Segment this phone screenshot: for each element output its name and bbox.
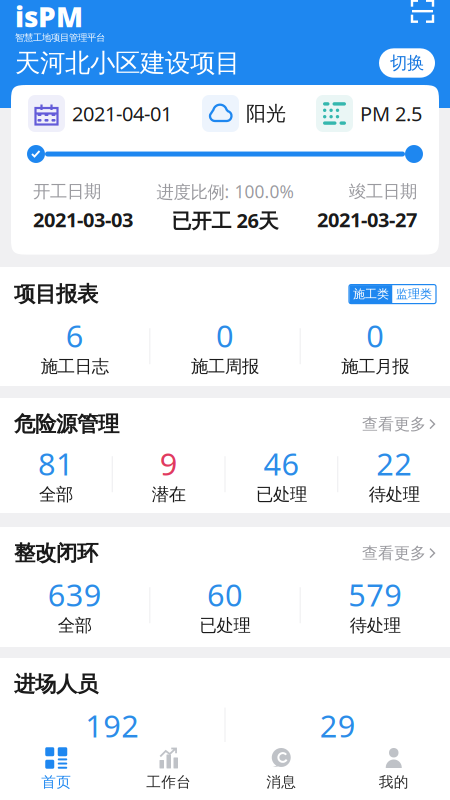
staticText: 192 [85, 705, 139, 746]
button[interactable]: 工作台 [112, 747, 225, 791]
staticText: 我的 [379, 773, 409, 791]
staticText: 0 [216, 315, 234, 356]
staticText: 已处理 [199, 615, 250, 636]
staticText: 消息 [266, 773, 296, 791]
staticText: 进度比例: 100.0% [156, 180, 293, 203]
staticText: 开工日期 [33, 181, 101, 202]
staticText: 0 [366, 315, 384, 356]
staticText: 天河北小区建设项目 [15, 47, 240, 78]
button[interactable]: 切换 [379, 48, 435, 78]
staticText: 进场人员 [14, 671, 98, 697]
staticText: 首页 [41, 773, 71, 791]
staticText: 施工周报 [191, 356, 259, 377]
staticText: 22 [376, 443, 412, 484]
staticText: 2021-04-01 [72, 100, 172, 127]
staticText: 639 [48, 574, 102, 615]
staticText: 全部 [58, 615, 92, 636]
staticText: 施工月报 [341, 356, 409, 377]
staticText: 施工类 [353, 287, 389, 301]
button[interactable]: 施工类 [349, 285, 392, 303]
button[interactable]: 我的 [337, 747, 450, 791]
staticText: 监理类 [396, 287, 432, 301]
staticText: 项目报表 [14, 281, 98, 307]
staticText: 46 [263, 443, 299, 484]
staticText: 施工日志 [41, 356, 109, 377]
staticText: 整改闭环 [14, 540, 98, 566]
staticText: 已处理 [256, 484, 307, 505]
staticText: 2021-03-27 [317, 206, 417, 233]
staticText: 29 [320, 705, 356, 746]
staticText: 智慧工地项目管理平台 [15, 32, 105, 43]
staticText: 9 [160, 443, 178, 484]
staticText: 2021-03-03 [33, 206, 133, 233]
button[interactable]: 扫一扫 [411, 0, 435, 24]
staticText: 60 [207, 574, 243, 615]
button[interactable]: 首页 [0, 747, 112, 791]
staticText: 查看更多 [362, 543, 426, 563]
staticText: PM 2.5 [360, 100, 422, 127]
staticText: 已开工 26天 [171, 207, 278, 234]
staticText: 全部 [39, 484, 73, 505]
staticText: 查看更多 [362, 414, 426, 434]
staticText: 竣工日期 [349, 181, 417, 202]
button[interactable]: 监理类 [392, 285, 435, 303]
staticText: 阳光 [246, 101, 286, 126]
staticText: 81 [38, 443, 74, 484]
button[interactable]: 查看更多 [362, 414, 436, 434]
button[interactable]: 消息 [225, 747, 337, 791]
button[interactable]: 查看更多 [362, 543, 436, 563]
staticText: 待处理 [369, 484, 420, 505]
staticText: 潜在 [152, 484, 186, 505]
staticText: 切换 [390, 52, 424, 74]
staticText: 危险源管理 [14, 411, 119, 437]
staticText: isPM [15, 0, 83, 35]
staticText: 待处理 [350, 615, 401, 636]
staticText: 6 [66, 315, 84, 356]
staticText: 579 [348, 574, 402, 615]
staticText: 工作台 [146, 773, 191, 791]
